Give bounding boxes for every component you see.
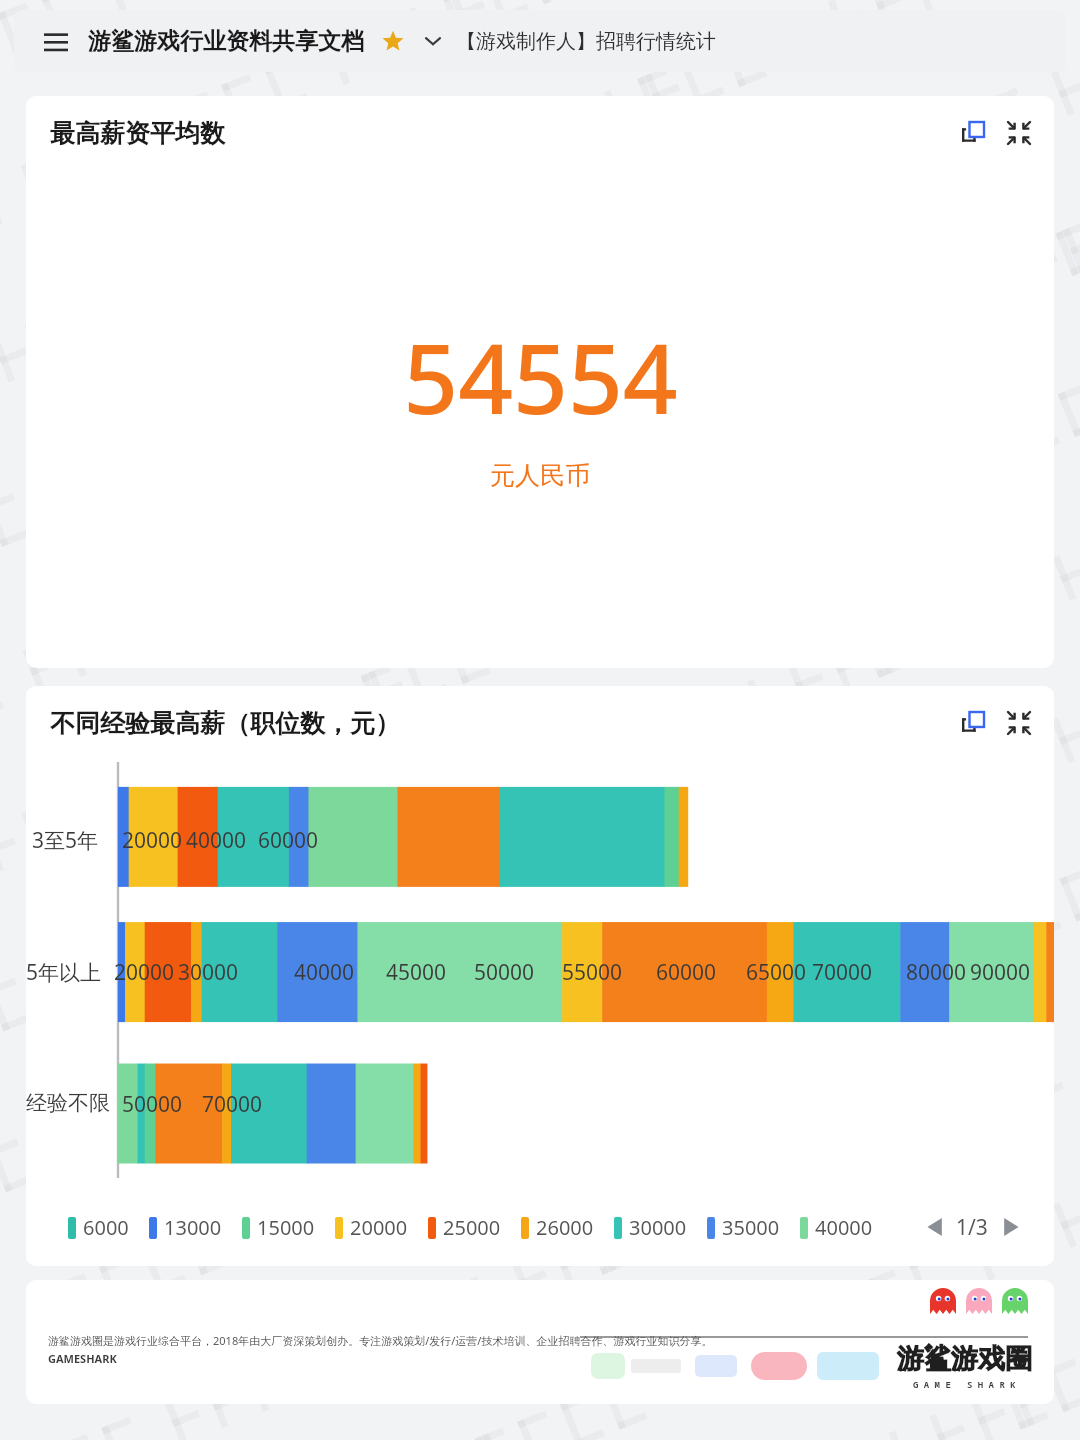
- staticText: G A M E S H A R K: [913, 1378, 1016, 1390]
- staticText: 20000: [350, 1214, 408, 1241]
- button[interactable]: 13000: [149, 1214, 222, 1241]
- staticText: 最高薪资平均数: [50, 118, 225, 149]
- staticText: 40000: [186, 826, 247, 855]
- staticText: 90000: [970, 958, 1031, 987]
- staticText: 45000: [386, 958, 447, 987]
- button[interactable]: Expand: [416, 24, 450, 58]
- staticText: 54554: [403, 311, 678, 442]
- button[interactable]: Duplicate: [956, 116, 990, 150]
- staticText: 50000: [122, 1090, 183, 1119]
- staticText: 游鲨游戏圈: [897, 1342, 1032, 1376]
- staticText: 15000: [257, 1214, 315, 1241]
- button[interactable]: 6000: [68, 1214, 129, 1241]
- button[interactable]: Previous page: [918, 1210, 952, 1244]
- staticText: 40000: [294, 958, 355, 987]
- button[interactable]: 15000: [242, 1214, 315, 1241]
- staticText: 【游戏制作人】招聘行情统计: [456, 29, 716, 54]
- staticText: 游鲨游戏行业资料共享文档: [88, 27, 364, 56]
- staticText: 65000: [746, 958, 807, 987]
- staticText: 5年以上: [26, 958, 102, 987]
- staticText: 1/3: [956, 1213, 988, 1242]
- button[interactable]: 30000: [614, 1214, 687, 1241]
- button[interactable]: 25000: [428, 1214, 501, 1241]
- staticText: 70000: [202, 1090, 263, 1119]
- staticText: 40000: [815, 1214, 873, 1241]
- staticText: 20000: [122, 826, 183, 855]
- staticText: 25000: [443, 1214, 501, 1241]
- staticText: 55000: [562, 958, 623, 987]
- staticText: 60000: [258, 826, 319, 855]
- button[interactable]: 40000: [800, 1214, 873, 1241]
- staticText: 游鲨游戏圈是游戏行业综合平台，2018年由大厂资深策划创办。专注游戏策划/发行/…: [48, 1333, 713, 1348]
- button[interactable]: Collapse: [1002, 706, 1036, 740]
- staticText: 13000: [164, 1214, 222, 1241]
- button[interactable]: 20000: [335, 1214, 408, 1241]
- staticText: 不同经验最高薪（职位数，元）: [50, 708, 400, 739]
- staticText: 35000: [722, 1214, 780, 1241]
- button[interactable]: Next page: [994, 1210, 1028, 1244]
- staticText: 70000: [812, 958, 873, 987]
- button[interactable]: Favorite: [376, 24, 410, 58]
- staticText: 60000: [656, 958, 717, 987]
- staticText: 经验不限: [26, 1090, 110, 1116]
- staticText: 30000: [178, 958, 239, 987]
- button[interactable]: 26000: [521, 1214, 594, 1241]
- staticText: 26000: [536, 1214, 594, 1241]
- staticText: GAMESHARK: [48, 1351, 117, 1366]
- button[interactable]: 35000: [707, 1214, 780, 1241]
- button[interactable]: Collapse: [1002, 116, 1036, 150]
- button[interactable]: Menu: [36, 21, 76, 61]
- staticText: 3至5年: [32, 826, 99, 855]
- staticText: 6000: [83, 1214, 129, 1241]
- staticText: 50000: [474, 958, 535, 987]
- staticText: 元人民币: [490, 460, 590, 491]
- staticText: 20000: [114, 958, 175, 987]
- staticText: 80000: [906, 958, 967, 987]
- button[interactable]: Duplicate: [956, 706, 990, 740]
- staticText: 30000: [629, 1214, 687, 1241]
